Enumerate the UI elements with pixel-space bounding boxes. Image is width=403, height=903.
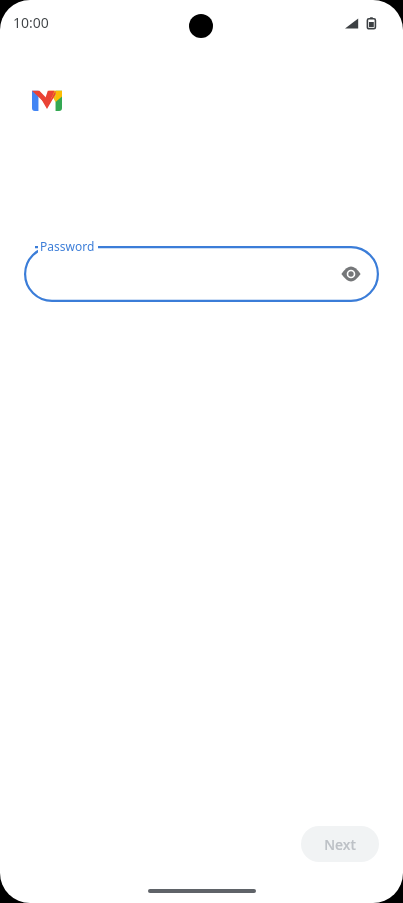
button[interactable]: Next: [301, 826, 379, 862]
button[interactable]: Show password: [24, 246, 379, 302]
staticText: Password: [40, 238, 95, 254]
staticText: Next: [324, 835, 356, 854]
staticText: 10:00: [13, 13, 49, 32]
button[interactable]: Show password: [337, 260, 365, 288]
